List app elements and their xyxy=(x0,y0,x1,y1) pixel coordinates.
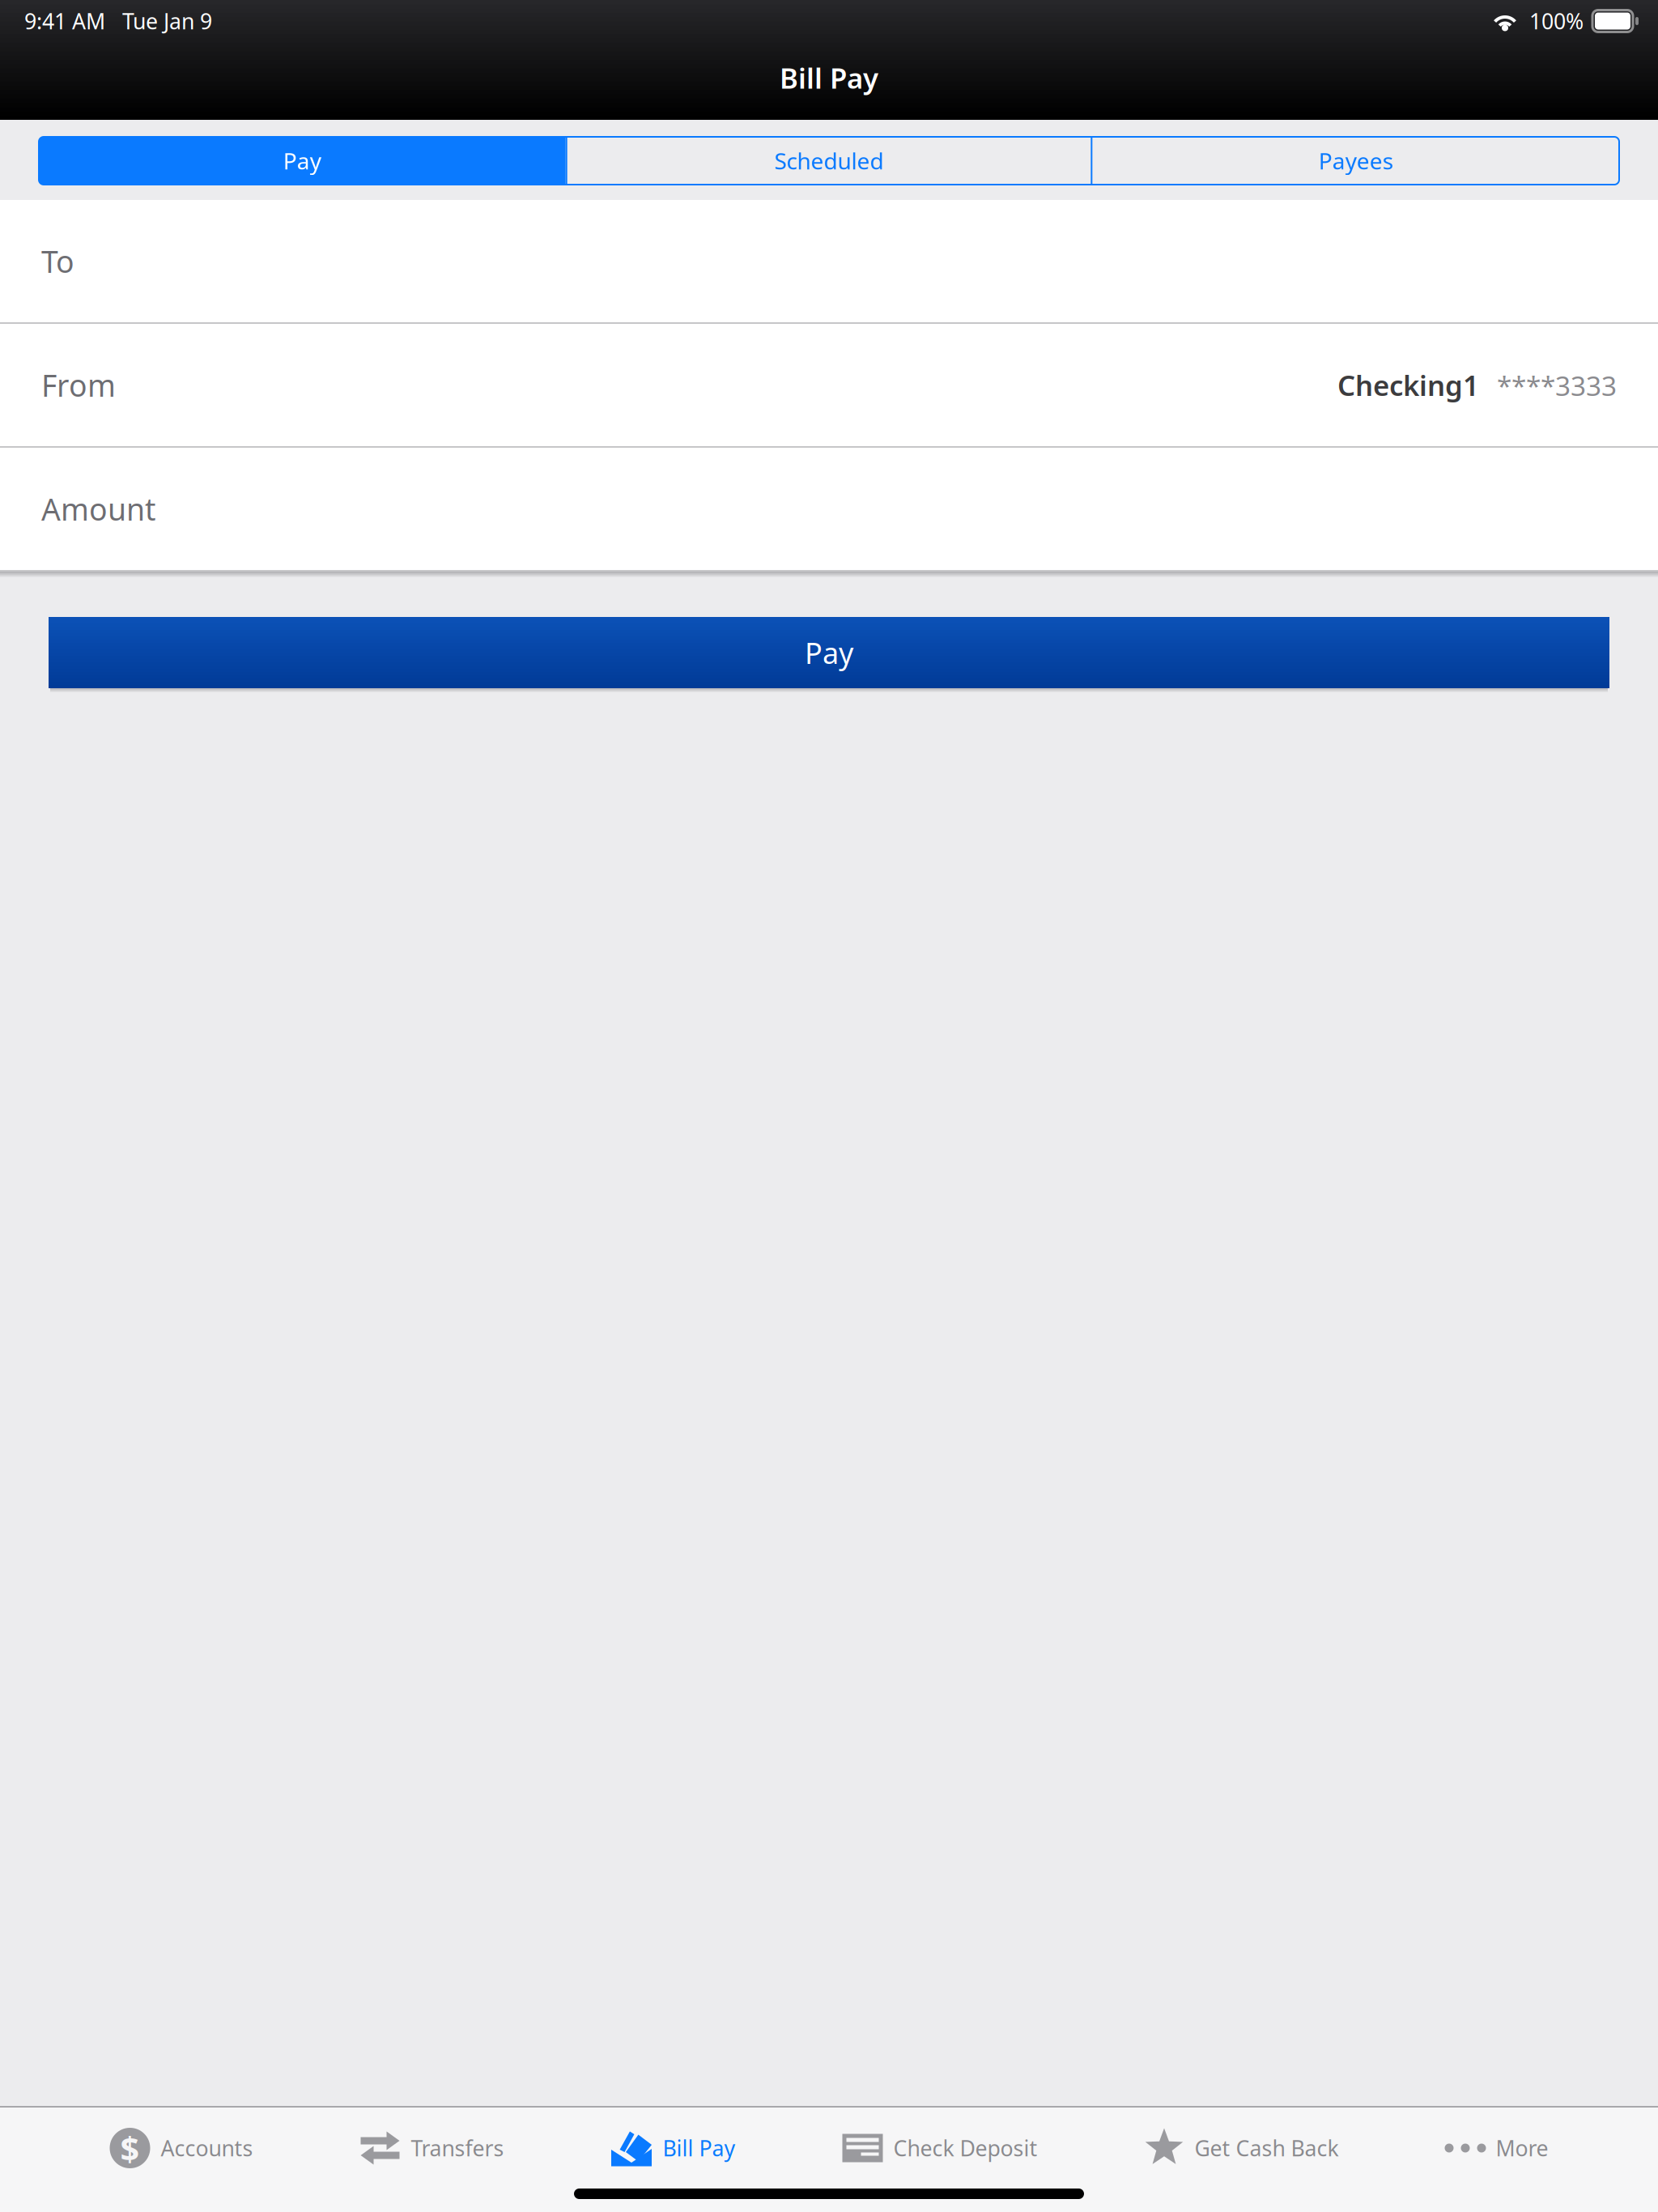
staticText: ****3333 xyxy=(1497,368,1617,403)
staticText: 9:41 AM xyxy=(24,7,105,35)
button[interactable]: Scheduled xyxy=(566,137,1092,185)
staticText: To xyxy=(41,241,74,281)
button[interactable]: From xyxy=(0,324,1658,446)
button[interactable]: Pay xyxy=(49,617,1609,688)
staticText: Get Cash Back xyxy=(1195,2134,1339,2162)
button[interactable]: Amount xyxy=(0,448,1658,570)
staticText: Bill Pay xyxy=(663,2134,735,2162)
button[interactable]: To xyxy=(0,200,1658,322)
staticText: Check Deposit xyxy=(893,2134,1037,2162)
button[interactable]: Payees xyxy=(1092,137,1619,185)
staticText: Scheduled xyxy=(774,146,884,176)
staticText: Tue Jan 9 xyxy=(122,7,212,35)
staticText: More xyxy=(1496,2134,1548,2162)
staticText: Checking1 xyxy=(1337,366,1479,404)
button[interactable]: Transfers xyxy=(360,2117,504,2179)
staticText: 100% xyxy=(1529,7,1584,35)
staticText: Accounts xyxy=(161,2134,253,2162)
button[interactable]: Check Deposit xyxy=(842,2117,1037,2179)
staticText: Bill Pay xyxy=(780,59,878,96)
button[interactable]: More xyxy=(1445,2117,1548,2179)
staticText: Pay xyxy=(283,146,321,176)
staticText: From xyxy=(41,365,116,405)
button[interactable]: $ xyxy=(110,2117,253,2179)
button[interactable]: Pay xyxy=(39,137,566,185)
staticText: Amount xyxy=(41,489,155,529)
staticText: Payees xyxy=(1319,146,1393,176)
button[interactable]: Get Cash Back xyxy=(1144,2117,1339,2179)
staticText: Transfers xyxy=(411,2134,504,2162)
button[interactable]: Bill Pay xyxy=(611,2117,735,2179)
staticText: $ xyxy=(120,2126,140,2170)
staticText: Pay xyxy=(805,633,853,672)
